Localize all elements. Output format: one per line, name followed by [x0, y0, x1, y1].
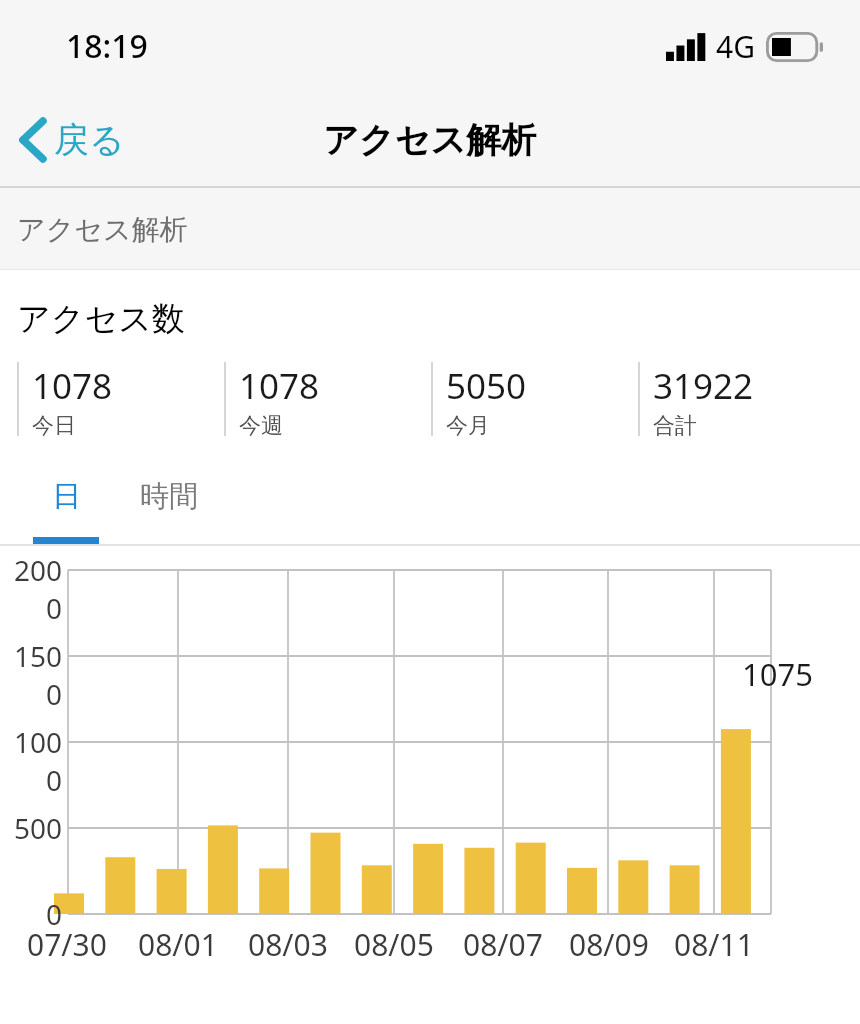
staticText: 500 — [13, 809, 62, 847]
staticText: 1500 — [0, 637, 62, 713]
staticText: 0 — [45, 895, 62, 933]
staticText: 日 — [52, 478, 81, 515]
staticText: 18:19 — [66, 24, 148, 68]
staticText: 08/07 — [463, 924, 543, 965]
staticText: アクセス数 — [17, 298, 186, 340]
staticText: アクセス解析 — [17, 212, 188, 247]
staticText: 08/11 — [674, 924, 754, 965]
staticText: 08/01 — [138, 924, 218, 965]
button[interactable]: Back — [0, 106, 145, 174]
staticText: 今月 — [446, 412, 490, 436]
staticText: 今日 — [32, 412, 76, 436]
staticText: 1078 — [32, 362, 113, 410]
button[interactable]: 時間 — [124, 478, 214, 536]
staticText: 08/05 — [354, 924, 434, 965]
staticText: 今週 — [239, 412, 283, 436]
staticText: アクセス解析 — [323, 118, 537, 162]
staticText: 1078 — [239, 362, 320, 410]
staticText: 時間 — [140, 478, 198, 515]
staticText: 1075 — [742, 653, 813, 695]
button[interactable]: 日 — [33, 478, 99, 544]
staticText: 31922 — [653, 362, 754, 410]
staticText: 4G — [716, 26, 755, 67]
staticText: 戻る — [54, 118, 125, 162]
staticText: 08/03 — [248, 924, 328, 965]
staticText: 1000 — [0, 723, 62, 799]
staticText: 08/09 — [569, 924, 649, 965]
staticText: 5050 — [446, 362, 527, 410]
staticText: 2000 — [0, 551, 62, 627]
staticText: 合計 — [653, 412, 697, 436]
staticText: 07/30 — [27, 924, 107, 965]
